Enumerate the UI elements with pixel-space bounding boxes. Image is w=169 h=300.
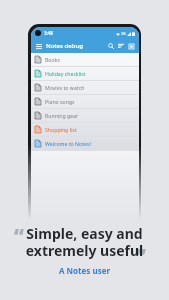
staticText: Holiday checklist (45, 70, 86, 77)
staticText: Notes debug (46, 42, 83, 50)
staticText: ” (136, 242, 146, 269)
staticText: Shopping list (45, 126, 77, 133)
button[interactable]: Shopping list (31, 123, 139, 137)
button[interactable]: Movies to watch (31, 81, 139, 95)
button[interactable]: Search (106, 41, 116, 51)
staticText: Simple, easy and extremely useful (22, 224, 147, 260)
staticText: “ (14, 222, 24, 249)
button[interactable]: Books (31, 53, 139, 67)
staticText: Running gear (45, 112, 79, 119)
button[interactable]: Change view (126, 41, 136, 51)
button[interactable]: Holiday checklist (31, 67, 139, 81)
button[interactable]: Running gear (31, 109, 139, 123)
staticText: A Notes user (59, 265, 111, 276)
staticText: 3:48 (44, 30, 53, 36)
staticText: 3G (121, 31, 126, 36)
staticText: Welcome to Notes! (45, 140, 91, 147)
staticText: Books (45, 56, 60, 63)
button[interactable]: Open navigation drawer (34, 42, 43, 51)
button[interactable]: Piano songs (31, 95, 139, 109)
button[interactable]: Sort (116, 41, 126, 51)
staticText: Movies to watch (45, 84, 85, 91)
staticText: Piano songs (45, 98, 75, 105)
button[interactable]: Welcome to Notes! (31, 137, 139, 151)
